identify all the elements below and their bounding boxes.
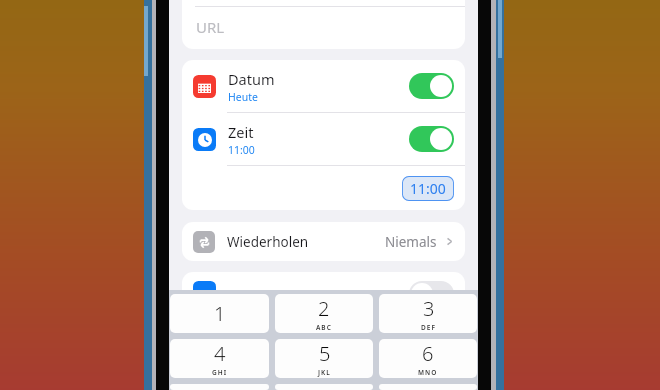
staticText: 4 (214, 340, 226, 367)
staticText: Heute (228, 90, 258, 104)
staticText: Wiederholen (227, 233, 309, 251)
staticText: ABC (316, 323, 332, 332)
button[interactable]: 7 (170, 384, 269, 390)
staticText: DEF (421, 323, 436, 332)
button[interactable] (182, 272, 465, 308)
button[interactable]: 11:00 (402, 176, 454, 201)
button[interactable]: Zeit (182, 113, 465, 165)
button[interactable]: 9 (379, 384, 477, 390)
staticText: Niemals (385, 233, 437, 251)
staticText: Zeit (228, 122, 254, 142)
button[interactable]: Wiederholen (182, 222, 465, 261)
staticText: 6 (422, 340, 434, 367)
staticText: MNO (418, 368, 438, 377)
button[interactable]: Toggle on (409, 73, 454, 99)
staticText: 1 (214, 300, 226, 327)
button[interactable]: 5 (275, 339, 373, 378)
staticText: 3 (423, 295, 435, 322)
button[interactable]: 4 (170, 339, 269, 378)
button[interactable]: 8 (275, 384, 373, 390)
button[interactable]: Toggle on (409, 126, 454, 152)
button[interactable]: 3 (379, 294, 477, 333)
staticText: 11:00 (410, 179, 446, 198)
staticText: URL (196, 17, 225, 37)
button[interactable]: 1 (170, 294, 269, 333)
staticText: Datum (228, 69, 275, 89)
button[interactable]: 2 (275, 294, 373, 333)
button[interactable]: URL (182, 0, 465, 49)
staticText: GHI (212, 368, 228, 377)
staticText: JKL (318, 368, 331, 377)
staticText: 11:00 (228, 143, 255, 157)
button[interactable]: Datum (182, 60, 465, 112)
staticText: 2 (318, 295, 330, 322)
staticText: 5 (319, 340, 331, 367)
button[interactable]: 6 (379, 339, 477, 378)
